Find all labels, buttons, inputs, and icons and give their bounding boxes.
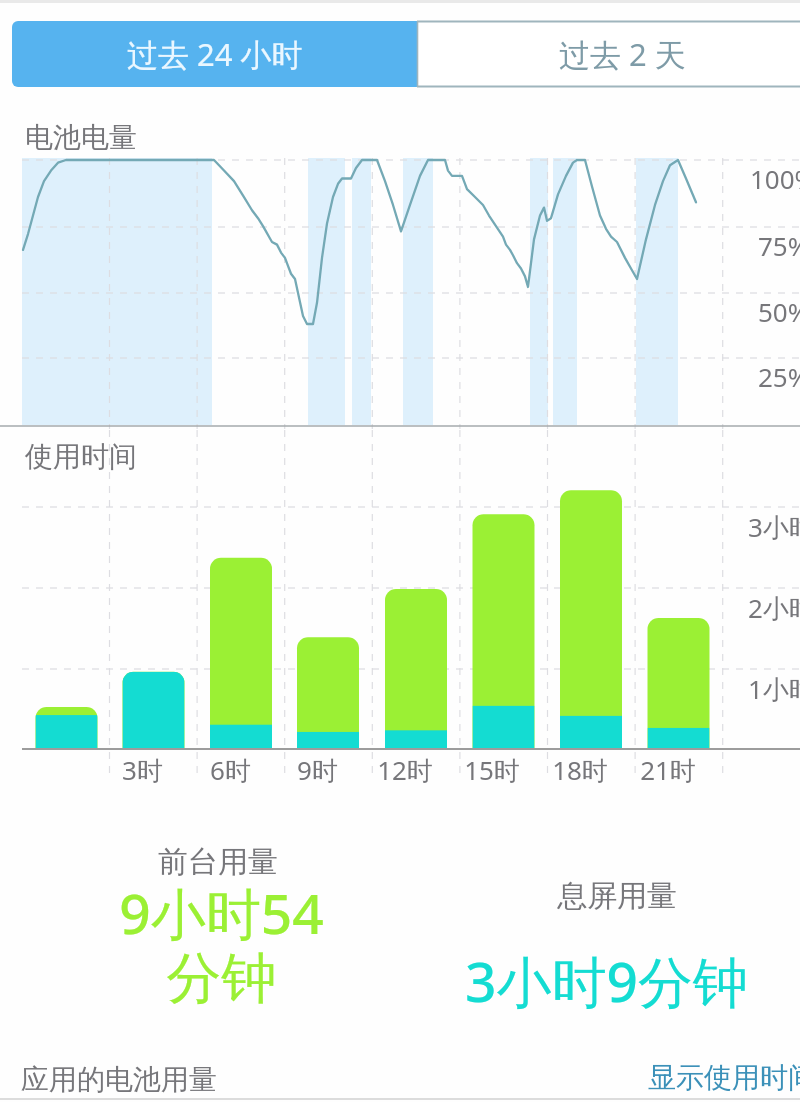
staticText: 显示使用时间 [648,1060,800,1095]
button[interactable]: 显示使用时间 [648,1060,800,1095]
staticText: 3小时 [748,509,800,545]
staticText: 前台用量 [158,843,278,881]
staticText: 75% [758,228,800,263]
staticText: 25% [758,359,800,394]
button[interactable]: 应用的电池用量 [0,1046,800,1102]
staticText: 3时 [122,752,163,788]
staticText: 过去 24 小时 [127,33,303,75]
button[interactable]: 过去 24 小时 [12,21,417,87]
staticText: 息屏用量 [557,877,677,915]
staticText: 3小时9分钟 [465,943,748,1018]
staticText: 1小时 [748,671,800,707]
staticText: 9小时54 分钟 [119,875,324,1013]
staticText: 9时 [297,752,338,788]
staticText: 15时 [464,752,520,788]
staticText: 电池电量 [25,120,137,155]
staticText: 2小时 [748,590,800,626]
staticText: 50% [758,294,800,329]
staticText: 过去 2 天 [559,33,686,75]
staticText: 12时 [377,752,433,788]
staticText: 应用的电池用量 [21,1062,217,1097]
staticText: 18时 [552,752,608,788]
staticText: 使用时间 [25,439,137,474]
staticText: 6时 [210,752,251,788]
staticText: 100% [750,161,800,196]
button[interactable]: 过去 2 天 [417,21,800,87]
staticText: 21时 [640,752,696,788]
